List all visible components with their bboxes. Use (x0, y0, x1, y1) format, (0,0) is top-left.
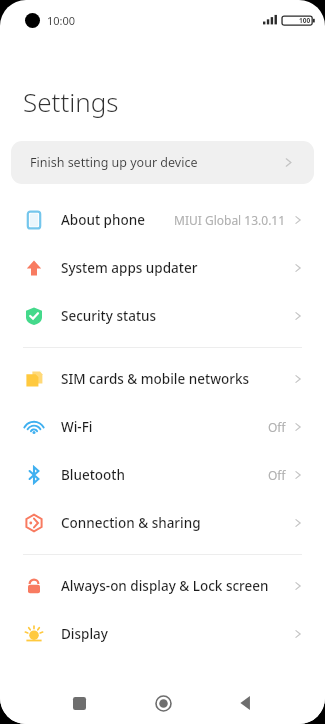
staticText: Off (268, 419, 286, 435)
staticText: Connection & sharing (61, 514, 286, 532)
staticText: Wi-Fi (61, 418, 262, 436)
staticText: Off (268, 467, 286, 483)
staticText: Security status (61, 307, 286, 325)
staticText: About phone (61, 211, 168, 229)
button[interactable]: Security status (0, 292, 325, 340)
staticText: System apps updater (61, 259, 286, 277)
staticText: Always-on display & Lock screen (61, 577, 286, 595)
button[interactable]: System apps updater (0, 244, 325, 292)
staticText: Bluetooth (61, 466, 262, 484)
button[interactable]: Display (0, 610, 325, 658)
button[interactable]: Wi-Fi (0, 403, 325, 451)
button[interactable]: About phone (0, 196, 325, 244)
button[interactable]: Home (146, 686, 180, 720)
staticText: 100 (299, 16, 311, 25)
button[interactable]: Connection & sharing (0, 499, 325, 547)
button[interactable]: SIM cards & mobile networks (0, 355, 325, 403)
button[interactable]: Finish setting up your device (11, 141, 314, 184)
button[interactable]: Always-on display & Lock screen (0, 562, 325, 610)
staticText: SIM cards & mobile networks (61, 370, 286, 388)
button[interactable]: Recents (62, 686, 96, 720)
button[interactable]: Bluetooth (0, 451, 325, 499)
staticText: 10:00 (47, 13, 76, 28)
staticText: Finish setting up your device (30, 154, 282, 171)
staticText: Settings (23, 84, 119, 119)
staticText: MIUI Global 13.0.11 (174, 212, 286, 228)
button[interactable]: Back (229, 686, 263, 720)
staticText: Display (61, 625, 286, 643)
